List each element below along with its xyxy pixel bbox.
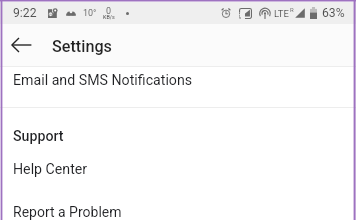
staticText: KB/s bbox=[103, 14, 115, 20]
staticText: Help Center bbox=[13, 161, 88, 178]
staticText: R bbox=[290, 6, 294, 13]
button[interactable]: Back bbox=[0, 24, 42, 66]
staticText: Settings bbox=[52, 37, 112, 56]
button[interactable]: Help Center bbox=[0, 144, 356, 180]
staticText: Email and SMS Notifications bbox=[13, 72, 193, 89]
staticText: 63% bbox=[322, 6, 345, 20]
staticText: 0 bbox=[106, 6, 112, 17]
staticText: 10° bbox=[83, 8, 97, 19]
button[interactable]: Email and SMS Notifications bbox=[0, 67, 356, 107]
button[interactable]: Report a Problem bbox=[0, 180, 356, 220]
staticText: Support bbox=[13, 128, 64, 144]
staticText: 9:22 bbox=[13, 6, 37, 20]
staticText: Report a Problem bbox=[13, 204, 122, 220]
staticText: LTE bbox=[274, 8, 289, 19]
